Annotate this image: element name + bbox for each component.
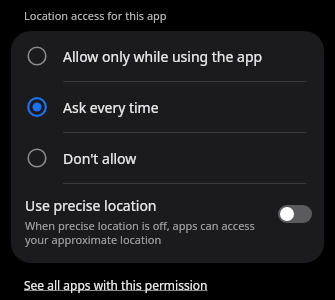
- staticText: Allow only while using the app: [63, 47, 263, 66]
- button[interactable]: Allow only while using the app: [11, 31, 324, 81]
- button[interactable]: Ask every time: [11, 82, 324, 132]
- staticText: Use precise location: [25, 196, 157, 215]
- button[interactable]: See all apps with this permission: [24, 277, 208, 293]
- staticText: Ask every time: [63, 98, 159, 117]
- button[interactable]: Don't allow: [11, 133, 324, 183]
- button[interactable]: Use precise location toggle: [278, 205, 312, 223]
- button[interactable]: Use precise location: [11, 184, 324, 263]
- staticText: See all apps with this permission: [24, 277, 208, 293]
- staticText: When precise location is off, apps can a…: [25, 218, 270, 247]
- staticText: Don't allow: [63, 149, 137, 168]
- staticText: Location access for this app: [24, 8, 167, 23]
